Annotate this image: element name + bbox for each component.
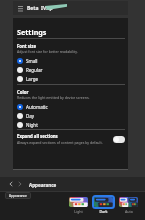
button[interactable]: Menu: [16, 4, 25, 13]
staticText: Large: [26, 76, 39, 82]
staticText: Color: [17, 89, 29, 95]
button[interactable]: [119, 197, 138, 207]
button[interactable]: Night: [13, 120, 128, 129]
staticText: Day: [26, 113, 35, 119]
staticText: Expand all sections: [17, 133, 58, 139]
button[interactable]: Large: [13, 74, 128, 83]
staticText: Appearance: [29, 182, 57, 188]
staticText: Adjust font size for better readability.: [17, 49, 78, 54]
staticText: Appearance: [9, 194, 27, 198]
staticText: Auto: [125, 209, 133, 214]
staticText: Automatic: [26, 104, 48, 110]
button[interactable]: Forward: [15, 179, 24, 188]
staticText: Regular: [26, 67, 43, 73]
button[interactable]: Automatic: [13, 102, 128, 111]
staticText: Settings: [17, 27, 47, 37]
staticText: Always expand sections of content pages …: [17, 140, 103, 145]
staticText: Dark: [99, 209, 108, 214]
button[interactable]: [69, 197, 88, 207]
staticText: Font size: [17, 43, 36, 49]
button[interactable]: Small: [13, 56, 128, 65]
button[interactable]: Regular: [13, 65, 128, 74]
staticText: Light: [74, 209, 83, 214]
staticText: Small: [26, 58, 38, 64]
staticText: Night: [26, 122, 38, 128]
button[interactable]: Expand all sections: [13, 132, 128, 146]
button[interactable]: Back: [6, 179, 15, 188]
button[interactable]: Appearance: [5, 192, 31, 199]
button[interactable]: Day: [13, 111, 128, 120]
staticText: Beta IVXp: [27, 5, 53, 12]
button[interactable]: [94, 197, 113, 207]
staticText: Reduces the light emitted by device scre…: [17, 95, 90, 100]
